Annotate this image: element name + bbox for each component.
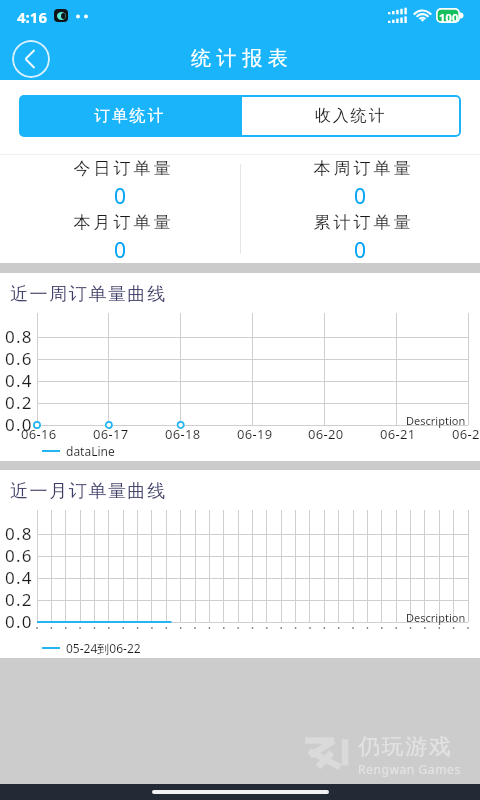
staticText: 统计报表 — [191, 46, 294, 71]
staticText: 06-22 — [452, 425, 480, 443]
staticText: 0.0 — [5, 610, 33, 633]
staticText: 06-17 — [93, 425, 129, 443]
staticText: 0 — [354, 236, 367, 263]
button[interactable]: 本周订单量 — [240, 155, 480, 209]
staticText: 06-19 — [237, 425, 273, 443]
staticText: Description — [406, 413, 466, 428]
staticText: 今日订单量 — [72, 158, 172, 179]
button[interactable]: 今日订单量 — [0, 155, 240, 209]
staticText: 0.4 — [5, 369, 33, 392]
staticText: 100 — [439, 10, 459, 25]
staticText: 0.2 — [5, 391, 33, 414]
staticText: dataLine — [66, 443, 115, 459]
staticText: 0.0 — [5, 413, 33, 436]
staticText: Rengwan Games — [358, 761, 461, 777]
staticText: 0.8 — [5, 522, 33, 545]
staticText: 仍玩游戏 — [358, 733, 453, 761]
staticText: 0.2 — [5, 588, 33, 611]
staticText: 0.8 — [5, 325, 33, 348]
staticText: Description — [406, 610, 466, 625]
staticText: 0.6 — [5, 544, 33, 567]
staticText: 06-21 — [380, 425, 416, 443]
button[interactable]: 累计订单量 — [240, 209, 480, 263]
staticText: 4:16 — [17, 7, 47, 27]
staticText: 0 — [114, 236, 127, 263]
button[interactable]: 收入统计 — [240, 95, 461, 137]
staticText: 0 — [114, 182, 127, 209]
button[interactable]: 订单统计 — [19, 95, 240, 137]
staticText: 05-24到06-22 — [66, 640, 141, 656]
staticText: 本月订单量 — [72, 212, 172, 233]
staticText: 06-16 — [21, 425, 57, 443]
staticText: 0 — [354, 182, 367, 209]
staticText: 累计订单量 — [312, 212, 412, 233]
staticText: 06-18 — [165, 425, 201, 443]
staticText: 0.4 — [5, 566, 33, 589]
staticText: 近一月订单量曲线 — [10, 480, 167, 503]
staticText: 近一周订单量曲线 — [10, 283, 167, 306]
staticText: 0.6 — [5, 347, 33, 370]
staticText: 本周订单量 — [312, 158, 412, 179]
staticText: 06-20 — [308, 425, 344, 443]
button[interactable]: Back — [12, 40, 50, 78]
button[interactable]: 本月订单量 — [0, 209, 240, 263]
staticText: 收入统计 — [315, 106, 387, 126]
staticText: 订单统计 — [94, 106, 166, 126]
